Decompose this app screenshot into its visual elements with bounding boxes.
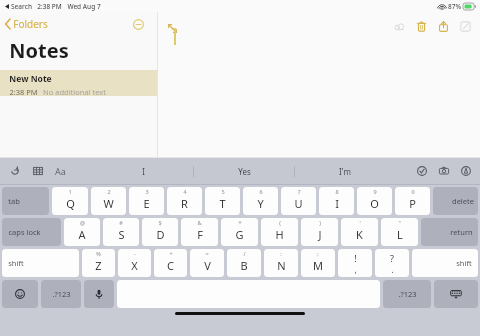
staticText: 7 (297, 188, 301, 195)
button[interactable]: delete (433, 187, 478, 215)
staticText: W (103, 196, 114, 211)
button[interactable]: + (154, 249, 187, 277)
staticText: 9 (373, 188, 377, 195)
button[interactable]: ; (301, 249, 335, 277)
staticText: # (119, 219, 123, 226)
button[interactable]: 8 (319, 187, 354, 215)
staticText: X (131, 258, 138, 273)
button[interactable]: % (82, 249, 115, 277)
button[interactable]: Table (30, 163, 46, 179)
staticText: & (197, 219, 202, 226)
staticText: M (313, 258, 323, 273)
button[interactable]: New Note (0, 70, 157, 96)
button[interactable]: 1 (52, 187, 88, 215)
button[interactable]: Emoji (2, 280, 38, 308)
staticText: Y (257, 196, 264, 211)
staticText: F (197, 227, 203, 242)
staticText: = (205, 250, 209, 257)
button[interactable]: : (264, 249, 298, 277)
staticText: 4 (183, 188, 187, 195)
button[interactable]: = (190, 249, 224, 277)
button[interactable]: ! (338, 249, 372, 277)
staticText: Yes (238, 166, 251, 177)
staticText: N (277, 258, 286, 273)
button[interactable]: 7 (281, 187, 316, 215)
button[interactable]: Dictation (84, 280, 114, 308)
button[interactable]: 2 (91, 187, 126, 215)
button[interactable]: Expand (164, 20, 180, 36)
button[interactable]: .?123 (383, 280, 431, 308)
button[interactable]: Folders (0, 14, 54, 34)
button[interactable]: Yes (194, 158, 294, 184)
staticText: @ (80, 219, 85, 226)
button[interactable]: 5 (205, 187, 240, 215)
button[interactable]: / (227, 249, 261, 277)
button[interactable]: I (94, 158, 193, 184)
button[interactable]: ) (301, 218, 338, 246)
staticText: 2:38 PM (9, 87, 38, 96)
staticText: , (354, 264, 357, 275)
staticText: " (398, 219, 401, 226)
button[interactable]: tab (2, 187, 49, 215)
staticText: 5 (221, 188, 225, 195)
button[interactable]: New note (454, 16, 476, 36)
staticText: O (370, 196, 379, 211)
button[interactable]: " (381, 218, 418, 246)
button[interactable]: Undo (7, 163, 23, 179)
staticText: * (238, 219, 242, 226)
button[interactable]: Share with others (388, 16, 410, 36)
staticText: return (450, 227, 473, 237)
staticText: I (335, 196, 339, 211)
button[interactable]: I'm (295, 158, 395, 184)
staticText: shift (8, 258, 24, 268)
staticText: A (78, 227, 86, 242)
button[interactable]: ' (341, 218, 378, 246)
staticText: Search (11, 2, 32, 11)
button[interactable]: ? (375, 249, 409, 277)
staticText: caps lock (8, 227, 41, 237)
staticText: Folders (13, 17, 48, 31)
button[interactable]: .?123 (41, 280, 81, 308)
button[interactable]: Aa (53, 162, 68, 180)
staticText: 6 (259, 188, 263, 195)
button[interactable]: & (181, 218, 218, 246)
button[interactable]: @ (64, 218, 100, 246)
button[interactable]: 9 (357, 187, 392, 215)
button[interactable]: shift (2, 249, 79, 277)
button[interactable]: Camera (436, 163, 452, 179)
button[interactable]: Collapse (129, 15, 147, 33)
staticText: ' (359, 219, 361, 226)
button[interactable]: 6 (243, 187, 278, 215)
button[interactable]: * (221, 218, 258, 246)
button[interactable]: - (118, 249, 151, 277)
button[interactable]: Share (432, 16, 454, 36)
staticText: T (219, 196, 226, 211)
button[interactable]: Checklist (414, 163, 430, 179)
button[interactable]: $ (142, 218, 178, 246)
button[interactable]: 0 (395, 187, 430, 215)
staticText: 2 (107, 188, 111, 195)
button[interactable]: return (421, 218, 478, 246)
button[interactable]: Delete (410, 16, 432, 36)
button[interactable]: Markup (458, 163, 474, 179)
staticText: I'm (339, 166, 351, 177)
staticText: ) (319, 219, 321, 226)
staticText: H (275, 227, 284, 242)
button[interactable]: Hide keyboard (434, 280, 478, 308)
staticText: U (294, 196, 303, 211)
button[interactable]: caps lock (2, 218, 61, 246)
button[interactable]: shift (412, 249, 478, 277)
staticText: L (397, 227, 403, 242)
staticText: P (409, 196, 416, 211)
button[interactable]: # (103, 218, 139, 246)
staticText: D (156, 227, 165, 242)
staticText: ; (317, 250, 319, 257)
staticText: .?123 (398, 289, 417, 299)
button[interactable]: 4 (167, 187, 202, 215)
staticText: No additional text (43, 87, 106, 96)
button[interactable]: 3 (129, 187, 164, 215)
staticText: ? (390, 252, 394, 264)
staticText: tab (8, 196, 20, 206)
button[interactable]: ( (261, 218, 298, 246)
